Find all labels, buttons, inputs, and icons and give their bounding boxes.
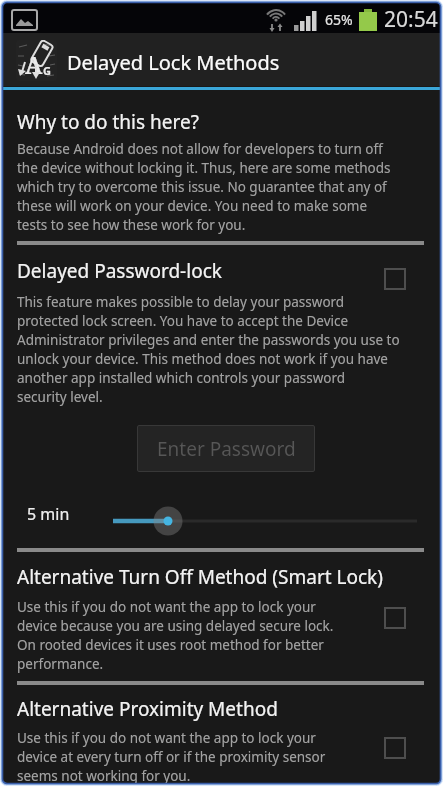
staticText: Alternative Proximity Method — [17, 696, 278, 722]
staticText: Use this if you do not want the app to l… — [17, 598, 334, 673]
staticText: G — [43, 63, 51, 78]
staticText: Alternative Turn Off Method (Smart Lock) — [17, 564, 383, 590]
button[interactable] — [384, 607, 406, 629]
staticText: 5 min — [27, 503, 70, 525]
staticText: Because Android does not allow for devel… — [17, 140, 391, 234]
staticText: This feature makes possible to delay you… — [17, 293, 400, 406]
button[interactable] — [384, 268, 406, 290]
staticText: Delayed Lock Methods — [67, 49, 280, 76]
staticText: A — [25, 49, 43, 80]
staticText: Enter Password — [157, 436, 296, 462]
staticText: 65% — [325, 10, 353, 29]
staticText: Why to do this here? — [17, 109, 199, 135]
staticText: 20:54 — [384, 5, 438, 34]
button[interactable] — [384, 737, 406, 759]
staticText: Delayed Password-lock — [17, 258, 222, 284]
staticText: Use this if you do not want the app to l… — [17, 729, 326, 784]
button[interactable]: Enter Password — [137, 425, 315, 472]
button[interactable] — [103, 500, 427, 542]
